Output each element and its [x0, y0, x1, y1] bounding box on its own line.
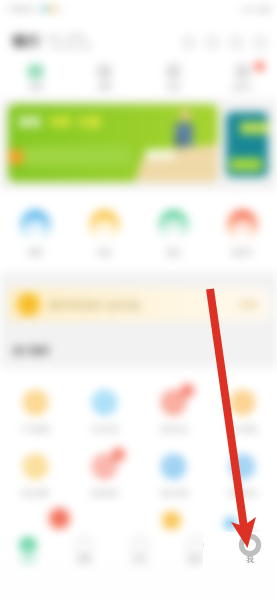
- button[interactable]: 发现: [167, 534, 222, 600]
- staticText: 我: [246, 555, 254, 564]
- button[interactable]: 账单查询: [208, 455, 277, 496]
- button[interactable]: Settings: [248, 30, 272, 54]
- staticText: 发现: [187, 555, 202, 564]
- button[interactable]: Scan: [200, 30, 224, 54]
- button[interactable]: 优惠: [0, 61, 70, 99]
- staticText: 理财: [28, 248, 43, 257]
- staticText: 理财: [77, 555, 92, 564]
- staticText: 去领取: [238, 300, 259, 309]
- staticText: 新客: [19, 115, 41, 129]
- button[interactable]: 手机充值: [70, 391, 139, 432]
- staticText: 保险服务: [91, 489, 119, 496]
- button[interactable]: 首页: [0, 534, 56, 600]
- staticText: 理财: [98, 82, 112, 91]
- staticText: 中国移动: [7, 5, 33, 13]
- button[interactable]: 理财: [0, 210, 70, 257]
- button[interactable]: 信用卡: [208, 210, 277, 257]
- staticText: 生活缴费: [21, 425, 49, 432]
- staticText: 信用卡: [231, 248, 254, 257]
- button[interactable]: 新客: [8, 104, 218, 182]
- button[interactable]: 理财: [56, 534, 112, 600]
- button[interactable]: 信用卡: [208, 61, 277, 99]
- staticText: 新手专享 送你一份大礼包: [50, 299, 141, 310]
- staticText: 礼遇: [78, 115, 100, 129]
- button[interactable]: [226, 112, 268, 177]
- staticText: 首页: [21, 555, 36, 564]
- button[interactable]: Search: [176, 30, 200, 54]
- button[interactable]: 优惠活动: [139, 391, 208, 432]
- button[interactable]: 新手专享 送你一份大礼包: [8, 288, 269, 321]
- button[interactable]: 贷款申请: [139, 455, 208, 496]
- staticText: 贷款: [166, 248, 181, 257]
- button[interactable]: 积分商城: [208, 391, 277, 432]
- staticText: 信用卡: [232, 82, 253, 91]
- staticText: 热门推荐: [13, 345, 49, 356]
- button[interactable]: 理财: [70, 61, 139, 99]
- button[interactable]: 保险服务: [70, 455, 139, 496]
- staticText: 银行: [12, 33, 40, 51]
- staticText: 专享: [49, 115, 71, 129]
- button[interactable]: 生活: [112, 534, 167, 600]
- staticText: 积分商城: [229, 425, 257, 432]
- button[interactable]: Messages: [224, 30, 248, 54]
- button[interactable]: 基金理财: [0, 455, 70, 496]
- staticText: 优惠: [29, 82, 43, 91]
- staticText: 账单查询: [229, 489, 257, 496]
- button[interactable]: 存款: [70, 210, 139, 257]
- button[interactable]: 我: [222, 534, 277, 600]
- button[interactable]: 贷款: [139, 61, 208, 99]
- button[interactable]: 生活缴费: [0, 391, 70, 432]
- button[interactable]: 贷款: [139, 210, 208, 257]
- staticText: 我: [246, 555, 254, 564]
- button[interactable]: 我: [222, 534, 277, 600]
